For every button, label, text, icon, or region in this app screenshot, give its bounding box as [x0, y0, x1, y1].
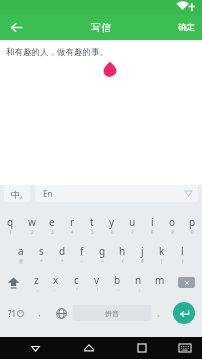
staticText: d — [59, 244, 66, 258]
button[interactable]: w — [21, 210, 42, 239]
staticText: c — [74, 273, 79, 287]
button[interactable]: u — [122, 210, 142, 239]
staticText: - — [81, 258, 83, 264]
staticText: v — [94, 273, 100, 287]
button[interactable]: h — [112, 239, 132, 268]
button[interactable]: 中, — [4, 185, 30, 202]
button[interactable]: a — [10, 239, 31, 268]
staticText: ！ — [95, 287, 99, 292]
staticText: 9 — [171, 229, 174, 235]
button[interactable]: En — [35, 185, 198, 202]
staticText: 6 — [111, 229, 114, 235]
button[interactable]: Enter — [169, 297, 199, 329]
staticText: ： — [116, 287, 120, 292]
button[interactable]: i — [142, 210, 162, 239]
button[interactable]: Back — [6, 17, 26, 37]
staticText: 5 — [91, 229, 94, 235]
button[interactable]: ， — [29, 297, 49, 329]
staticText: q — [7, 215, 14, 229]
staticText: f — [80, 244, 84, 258]
button[interactable]: l — [172, 239, 192, 268]
staticText: 拼音 — [105, 309, 119, 318]
staticText: ， — [35, 287, 39, 292]
staticText: 1 — [9, 229, 12, 235]
staticText: u — [129, 215, 136, 229]
staticText: s — [39, 244, 44, 258]
button[interactable]: ?1 — [3, 297, 29, 329]
staticText: z — [34, 273, 39, 287]
staticText: r — [70, 215, 75, 229]
button[interactable]: s — [31, 239, 52, 268]
staticText: l — [181, 244, 184, 258]
button[interactable]: 确定 — [171, 18, 202, 37]
button[interactable]: g — [92, 239, 112, 268]
staticText: En — [43, 188, 53, 199]
button[interactable]: d — [52, 239, 72, 268]
staticText: ， — [35, 308, 43, 318]
button[interactable]: n — [128, 268, 149, 297]
staticText: 。 — [54, 287, 58, 292]
staticText: x — [53, 273, 59, 287]
button[interactable]: p — [182, 210, 202, 239]
staticText: 3 — [51, 229, 54, 235]
staticText: o — [169, 215, 176, 229]
button[interactable]: y — [102, 210, 122, 239]
staticText: / — [122, 258, 124, 264]
staticText: @ — [19, 258, 24, 264]
staticText: ； — [137, 287, 141, 292]
button[interactable]: Shift — [0, 268, 26, 297]
staticText: g — [99, 244, 106, 258]
staticText: p — [189, 215, 196, 229]
staticText: t — [90, 215, 94, 229]
staticText: 8 — [151, 229, 154, 235]
button[interactable]: Home — [62, 337, 115, 359]
button[interactable]: c — [66, 268, 86, 297]
button[interactable]: t — [82, 210, 102, 239]
button[interactable]: x — [46, 268, 66, 297]
staticText: e — [49, 215, 55, 229]
staticText: 4 — [71, 229, 74, 235]
staticText: 写信 — [91, 21, 111, 34]
button[interactable]: z — [26, 268, 46, 297]
button[interactable]: e — [42, 210, 62, 239]
staticText: = — [101, 258, 104, 264]
button[interactable]: r — [62, 210, 82, 239]
button[interactable]: k — [152, 239, 172, 268]
staticText: k — [159, 244, 165, 258]
staticText: # — [141, 258, 144, 264]
staticText: a — [18, 244, 24, 258]
staticText: + — [61, 258, 64, 264]
button[interactable]: f — [72, 239, 92, 268]
staticText: w — [28, 215, 36, 229]
staticText: 。 — [157, 309, 164, 318]
button[interactable]: m — [149, 268, 170, 297]
staticText: 0 — [191, 229, 194, 235]
button[interactable]: q — [0, 210, 21, 239]
button[interactable]: Backspace — [170, 268, 202, 297]
staticText: y — [109, 215, 115, 229]
button[interactable]: j — [132, 239, 152, 268]
staticText: 中, — [11, 188, 23, 200]
staticText: ( — [161, 258, 163, 264]
staticText: 2 — [31, 229, 34, 235]
button[interactable]: Change language — [49, 297, 73, 329]
staticText: h — [119, 244, 126, 258]
staticText: ？ — [75, 287, 79, 292]
button[interactable]: o — [162, 210, 182, 239]
button[interactable]: Switch keyboard — [168, 337, 202, 359]
button[interactable]: Recents — [115, 337, 168, 359]
staticText: b — [114, 273, 121, 287]
staticText: ?1 — [8, 308, 17, 319]
staticText: n — [135, 273, 142, 287]
staticText: 确定 — [178, 22, 195, 33]
staticText: 和有趣的人，做有趣的事。 — [6, 47, 108, 58]
button[interactable]: 拼音 — [73, 305, 151, 321]
button[interactable]: v — [86, 268, 107, 297]
button[interactable]: b — [107, 268, 128, 297]
staticText: 7 — [131, 229, 134, 235]
staticText: ) — [182, 258, 184, 264]
staticText: m — [155, 273, 165, 287]
button[interactable]: Hide keyboard — [8, 337, 62, 359]
staticText: j — [141, 244, 144, 258]
